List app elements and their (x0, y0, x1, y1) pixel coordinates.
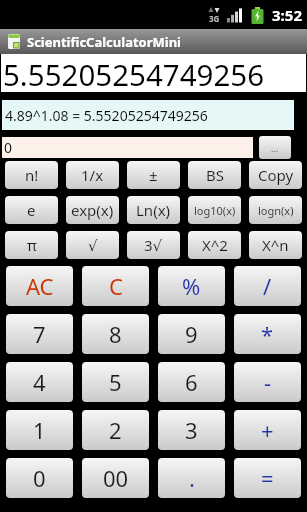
button[interactable]: Copy (249, 161, 302, 189)
button[interactable]: BS (188, 161, 241, 189)
button[interactable]: 7 (6, 314, 73, 354)
staticText: exp(x) (71, 200, 114, 220)
staticText: 5.55205254749256 (3, 54, 265, 92)
staticText: + (261, 415, 274, 445)
button[interactable]: 00 (82, 458, 149, 498)
staticText: 3√ (144, 235, 163, 255)
button[interactable]: 0 (6, 458, 73, 498)
staticText: - (264, 367, 272, 397)
button[interactable]: ... (259, 136, 291, 159)
button[interactable]: % (158, 266, 225, 306)
button[interactable]: * (234, 314, 301, 354)
staticText: 0 (4, 138, 13, 157)
button[interactable]: logn(x) (249, 196, 302, 224)
staticText: 00 (103, 463, 129, 493)
staticText: C (109, 271, 123, 301)
button[interactable]: 4 (6, 362, 73, 402)
staticText: 0 (33, 463, 46, 493)
staticText: = (261, 463, 274, 493)
staticText: 1/x (81, 165, 104, 185)
button[interactable]: √ (66, 231, 119, 259)
staticText: π (27, 235, 37, 255)
button[interactable]: - (234, 362, 301, 402)
button[interactable]: log10(x) (188, 196, 241, 224)
staticText: * (261, 319, 274, 349)
staticText: 7 (33, 319, 46, 349)
staticText: ± (149, 165, 158, 185)
staticText: % (182, 271, 201, 301)
button[interactable]: n! (5, 161, 58, 189)
button[interactable]: 2 (82, 410, 149, 450)
staticText: ... (271, 142, 279, 154)
staticText: X^2 (202, 235, 228, 255)
button[interactable]: Ln(x) (127, 196, 180, 224)
staticText: n! (25, 165, 39, 185)
staticText: 5 (109, 367, 122, 397)
staticText: logn(x) (258, 203, 294, 218)
button[interactable]: 5 (82, 362, 149, 402)
button[interactable]: π (5, 231, 58, 259)
button[interactable]: 9 (158, 314, 225, 354)
button[interactable]: 0 (2, 137, 253, 158)
staticText: X^n (262, 235, 289, 255)
button[interactable]: e (5, 196, 58, 224)
button[interactable]: exp(x) (66, 196, 119, 224)
button[interactable]: 3 (158, 410, 225, 450)
staticText: BS (206, 165, 224, 185)
staticText: 3 (185, 415, 198, 445)
staticText: 9 (185, 319, 198, 349)
staticText: log10(x) (194, 203, 236, 218)
staticText: 4 (33, 367, 46, 397)
staticText: 2 (109, 415, 122, 445)
button[interactable]: ± (127, 161, 180, 189)
button[interactable]: 1/x (66, 161, 119, 189)
staticText: . (189, 463, 195, 493)
staticText: 3G (209, 13, 220, 24)
staticText: 4.89^1.08 = 5.55205254749256 (5, 106, 208, 125)
button[interactable]: 3√ (127, 231, 180, 259)
button[interactable]: / (234, 266, 301, 306)
button[interactable]: 8 (82, 314, 149, 354)
staticText: √ (88, 237, 98, 254)
staticText: AC (26, 271, 54, 301)
staticText: 1 (33, 415, 46, 445)
button[interactable]: + (234, 410, 301, 450)
staticText: ScientificCalculatorMini (27, 33, 181, 51)
staticText: 3:52 (272, 5, 302, 25)
staticText: 8 (109, 319, 122, 349)
button[interactable]: X^n (249, 231, 302, 259)
button[interactable]: X^2 (188, 231, 241, 259)
button[interactable]: AC (6, 266, 73, 306)
staticText: e (27, 200, 36, 220)
staticText: 6 (185, 367, 198, 397)
button[interactable]: 1 (6, 410, 73, 450)
staticText: Copy (258, 165, 294, 185)
button[interactable]: . (158, 458, 225, 498)
staticText: / (263, 271, 272, 301)
staticText: Ln(x) (136, 200, 171, 220)
button[interactable]: = (234, 458, 301, 498)
button[interactable]: 6 (158, 362, 225, 402)
button[interactable]: C (82, 266, 149, 306)
